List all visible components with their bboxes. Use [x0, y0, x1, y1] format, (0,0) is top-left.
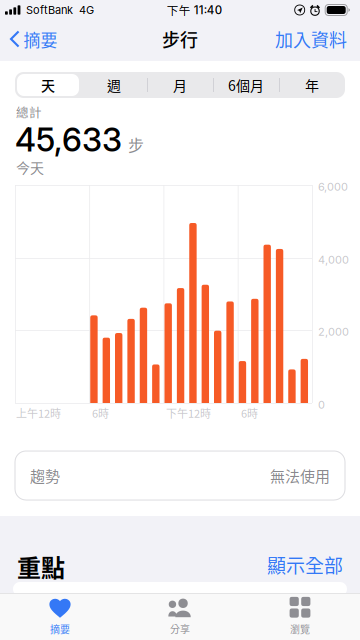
staticText: 下午12時 [166, 405, 211, 421]
button[interactable]: 顯示全部 [267, 551, 343, 578]
button[interactable]: 瀏覽 [240, 593, 360, 640]
staticText: 顯示全部 [267, 551, 343, 578]
button[interactable]: 趨勢 [15, 451, 345, 500]
staticText: 6,000 [318, 180, 348, 193]
button[interactable]: 6個月 [213, 72, 279, 98]
staticText: 總計 [16, 103, 42, 121]
button[interactable]: 週 [81, 72, 147, 98]
button[interactable]: 年 [279, 72, 345, 98]
button[interactable]: 分享 [120, 593, 240, 640]
staticText: 週 [107, 75, 121, 95]
staticText: 上午12時 [16, 405, 61, 421]
button[interactable]: 天 [15, 72, 81, 98]
staticText: 無法使用 [270, 465, 330, 486]
button[interactable]: 月 [147, 72, 213, 98]
staticText: 趨勢 [30, 465, 60, 486]
button[interactable]: 摘要 [0, 20, 65, 58]
staticText: 45,633 [15, 120, 122, 159]
staticText: SoftBank [26, 3, 73, 17]
staticText: 分享 [170, 621, 190, 636]
staticText: 下午 [167, 2, 191, 18]
staticText: 加入資料 [275, 26, 347, 52]
staticText: 11:40 [194, 3, 222, 17]
button[interactable]: 摘要 [0, 593, 120, 640]
staticText: 年 [305, 75, 319, 95]
staticText: 6時 [92, 405, 109, 421]
staticText: 重點 [17, 549, 65, 584]
staticText: 天 [41, 75, 55, 95]
staticText: 4,000 [318, 253, 349, 266]
staticText: 2,000 [318, 325, 349, 338]
staticText: 6時 [241, 405, 258, 421]
staticText: 步 [128, 133, 144, 156]
staticText: 今天 [16, 157, 44, 177]
staticText: 月 [173, 75, 187, 95]
staticText: 4G [79, 3, 94, 17]
button[interactable]: 加入資料 [267, 20, 360, 58]
staticText: 0 [318, 398, 325, 411]
staticText: 6個月 [228, 75, 264, 95]
staticText: 摘要 [50, 622, 70, 636]
staticText: 瀏覽 [290, 622, 310, 636]
staticText: 步行 [162, 26, 198, 52]
staticText: 摘要 [23, 27, 57, 51]
